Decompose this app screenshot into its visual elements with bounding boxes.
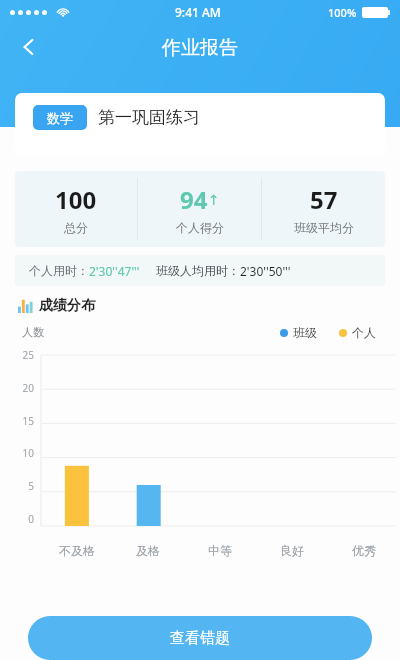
- staticText: 作业报告: [162, 36, 238, 60]
- staticText: 25: [22, 348, 34, 362]
- staticText: 15: [22, 414, 34, 428]
- staticText: 查看错题: [170, 629, 230, 648]
- staticText: 优秀: [352, 543, 376, 558]
- staticText: 班级平均分: [294, 220, 354, 235]
- button[interactable]: 查看错题: [28, 616, 372, 660]
- staticText: 良好: [280, 543, 304, 558]
- staticText: 个人: [352, 325, 376, 340]
- staticText: 班级人均用时：: [156, 263, 240, 278]
- staticText: 第一巩固练习: [98, 107, 200, 128]
- staticText: 57: [310, 183, 338, 216]
- staticText: 100%: [328, 5, 357, 20]
- staticText: 94: [180, 183, 208, 216]
- staticText: 不及格: [59, 543, 95, 558]
- staticText: 数学: [47, 110, 73, 126]
- staticText: 5: [28, 479, 34, 493]
- staticText: 10: [22, 446, 34, 460]
- staticText: 0: [28, 512, 34, 526]
- staticText: 个人用时：: [29, 263, 89, 278]
- staticText: 2'30''50''': [240, 263, 291, 279]
- staticText: 2'30''47''': [89, 263, 140, 279]
- staticText: 总分: [64, 220, 88, 235]
- staticText: 100: [55, 183, 97, 216]
- staticText: 9:41 AM: [175, 4, 221, 20]
- staticText: 20: [22, 381, 34, 395]
- staticText: 中等: [208, 543, 232, 558]
- staticText: 个人得分: [176, 220, 224, 235]
- button[interactable]: 数学: [15, 93, 385, 157]
- staticText: ↑: [208, 192, 220, 208]
- button[interactable]: Back: [6, 24, 52, 70]
- staticText: 成绩分布: [39, 297, 95, 315]
- staticText: 班级: [293, 325, 317, 340]
- staticText: 及格: [136, 543, 160, 558]
- staticText: 人数: [22, 325, 44, 339]
